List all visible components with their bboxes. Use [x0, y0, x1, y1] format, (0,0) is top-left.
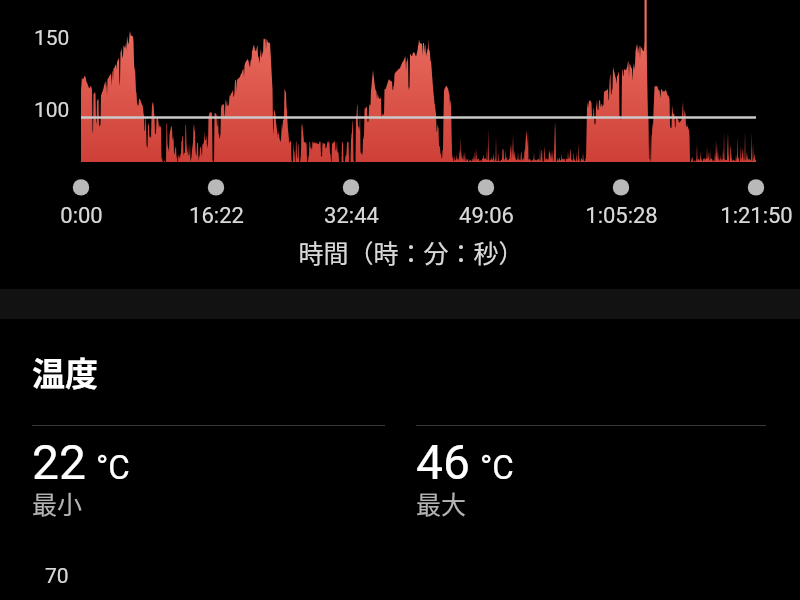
staticText: 49:06 — [459, 203, 514, 229]
staticText: 150 — [34, 26, 70, 51]
staticText: 100 — [34, 98, 70, 123]
button[interactable]: 22 — [32, 425, 385, 526]
staticText: 22 — [32, 434, 86, 490]
staticText: 1:21:50 — [720, 203, 793, 229]
staticText: 70 — [45, 564, 69, 589]
button[interactable]: 46 — [416, 425, 766, 526]
staticText: °C — [96, 448, 130, 487]
staticText: °C — [480, 448, 514, 487]
staticText: 1:05:28 — [585, 203, 658, 229]
staticText: 温度 — [32, 348, 98, 396]
staticText: 最小 — [32, 485, 83, 521]
staticText: 32:44 — [324, 203, 379, 229]
staticText: 最大 — [416, 485, 467, 521]
staticText: 0:00 — [60, 203, 103, 229]
staticText: 16:22 — [189, 203, 244, 229]
staticText: 46 — [416, 434, 470, 490]
button[interactable]: Heart rate chart — [0, 0, 800, 600]
staticText: 時間（時：分：秒） — [298, 234, 524, 270]
